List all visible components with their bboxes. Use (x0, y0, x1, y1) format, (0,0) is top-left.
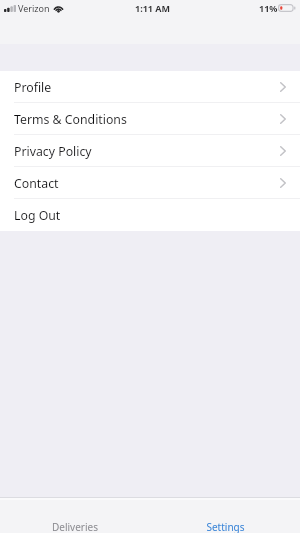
staticText: Profile (14, 79, 52, 96)
staticText: Contact (14, 175, 59, 192)
button[interactable]: Profile (0, 71, 300, 103)
staticText: Terms & Conditions (14, 111, 127, 128)
staticText: 11% (259, 2, 278, 14)
staticText: Log Out (14, 207, 61, 224)
staticText: 1:11 AM (135, 2, 171, 14)
button[interactable]: Terms & Conditions (0, 103, 300, 135)
staticText: Settings (206, 520, 245, 533)
staticText: Deliveries (52, 520, 98, 533)
button[interactable]: Contact (0, 167, 300, 199)
button[interactable]: Log Out (0, 199, 300, 231)
staticText: Verizon (18, 2, 50, 14)
button[interactable]: Deliveries (0, 500, 150, 533)
button[interactable]: Settings (150, 500, 300, 533)
button[interactable]: Privacy Policy (0, 135, 300, 167)
staticText: Privacy Policy (14, 143, 92, 160)
